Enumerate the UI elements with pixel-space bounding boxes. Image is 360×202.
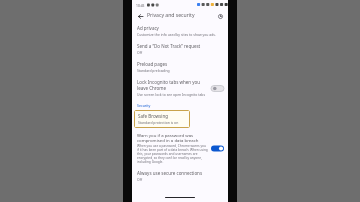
staticText: Standard protection is on: [138, 120, 179, 125]
staticText: Preload pages: [137, 61, 168, 67]
staticText: Customize the info used by sites to show…: [137, 32, 216, 37]
button[interactable]: Safe Browsing: [134, 110, 190, 128]
button[interactable]: Preload pages: [132, 58, 228, 76]
staticText: Off: [137, 177, 142, 182]
button[interactable]: Warn you if a password was compromised i…: [132, 131, 228, 167]
staticText: Send a “Do Not Track” request: [137, 43, 201, 49]
button[interactable]: Lock Incognito tabs when you leave Chrom…: [132, 76, 228, 100]
staticText: Safe Browsing: [138, 113, 168, 119]
button[interactable]: Always use secure connections: [132, 167, 228, 185]
staticText: 10:45: [136, 3, 145, 7]
staticText: Standard preloading: [137, 68, 170, 73]
staticText: Ad privacy: [137, 25, 159, 31]
button[interactable]: Ad privacy: [132, 22, 228, 40]
staticText: Off: [137, 50, 142, 55]
staticText: Warn you if a password was compromised i…: [137, 132, 208, 143]
staticText: Always use secure connections: [137, 170, 203, 176]
button[interactable]: Lock Incognito tabs: [211, 84, 224, 93]
staticText: Security: [137, 103, 151, 108]
button[interactable]: History: [215, 11, 225, 21]
button[interactable]: Warn about compromised passwords: [211, 144, 224, 153]
staticText: Privacy and security: [147, 12, 195, 19]
staticText: When you use a password, Chrome warns yo…: [137, 144, 208, 164]
button[interactable]: Send a “Do Not Track” request: [132, 40, 228, 58]
button[interactable]: Back: [135, 11, 145, 21]
staticText: Lock Incognito tabs when you leave Chrom…: [137, 79, 208, 91]
staticText: Use screen lock to see open Incognito ta…: [137, 92, 206, 97]
